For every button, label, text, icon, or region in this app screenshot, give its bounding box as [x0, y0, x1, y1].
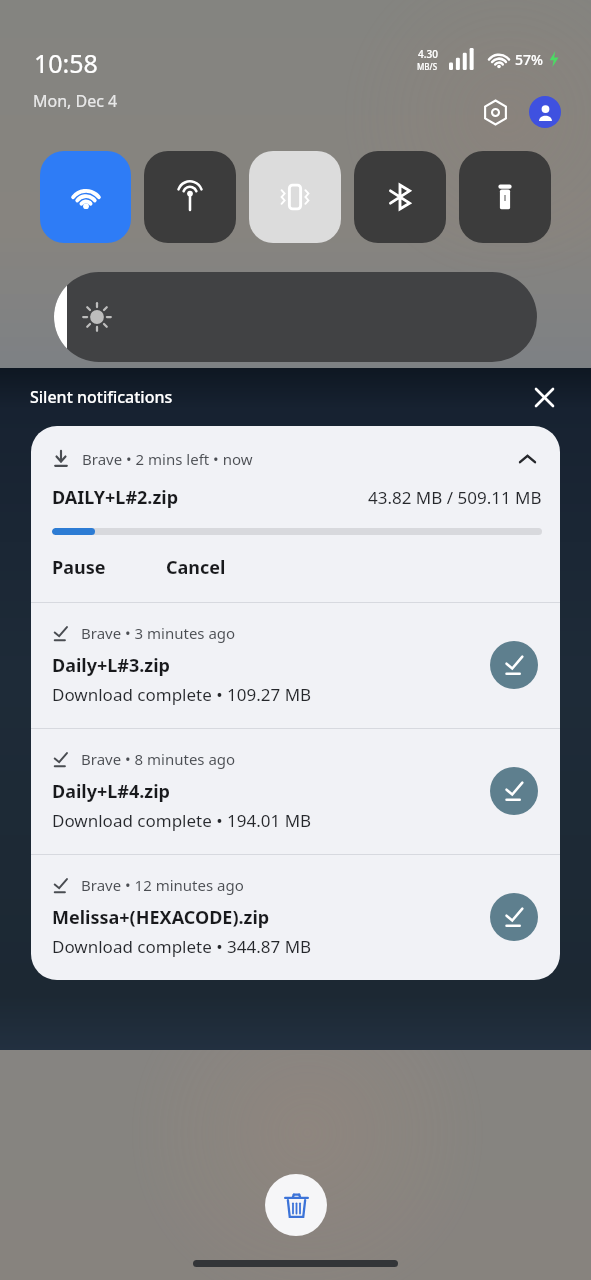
staticText: Silent notifications	[30, 386, 173, 408]
staticText: 57%	[515, 50, 543, 69]
staticText: Download complete • 194.01 MB	[52, 809, 312, 832]
button[interactable]: User profile	[529, 96, 561, 128]
button[interactable]: Vibrate	[249, 151, 341, 243]
staticText: Brave • 3 minutes ago	[81, 623, 236, 643]
staticText: Brave • 8 minutes ago	[81, 749, 236, 769]
button[interactable]: Bluetooth	[354, 151, 446, 243]
staticText: Download complete • 109.27 MB	[52, 683, 312, 706]
button[interactable]: Cancel	[166, 555, 236, 580]
button[interactable]: Brave • 12 minutes ago	[31, 855, 560, 980]
staticText: Brave • 12 minutes ago	[81, 875, 244, 895]
button[interactable]: Clear all notifications	[265, 1174, 327, 1236]
button[interactable]: Close	[527, 380, 561, 414]
staticText: Brave • 2 mins left • now	[82, 449, 253, 469]
staticText: Pause	[52, 555, 106, 580]
staticText: 43.82 MB / 509.11 MB	[368, 486, 542, 509]
staticText: Daily+L#4.zip	[52, 779, 170, 804]
button[interactable]: Brave • 8 minutes ago	[31, 729, 560, 854]
button[interactable]: Mobile data	[144, 151, 236, 243]
staticText: Mon, Dec 4	[33, 90, 118, 112]
button[interactable]: Wi-Fi	[40, 151, 131, 243]
staticText: 10:58	[34, 46, 98, 80]
button[interactable]: Pause	[52, 555, 116, 580]
button[interactable]: Brightness	[54, 272, 537, 362]
staticText: 4.30	[418, 47, 438, 61]
button[interactable]: Brave • 3 minutes ago	[31, 603, 560, 728]
button[interactable]: Settings	[478, 95, 512, 129]
staticText: Cancel	[166, 555, 226, 580]
staticText: Daily+L#3.zip	[52, 653, 170, 678]
staticText: Melissa+(HEXACODE).zip	[52, 905, 270, 930]
button[interactable]: Collapse	[512, 444, 542, 474]
staticText: DAILY+L#2.zip	[52, 485, 179, 510]
staticText: MB/S	[417, 61, 438, 72]
button[interactable]: Flashlight	[459, 151, 551, 243]
staticText: Download complete • 344.87 MB	[52, 935, 312, 958]
